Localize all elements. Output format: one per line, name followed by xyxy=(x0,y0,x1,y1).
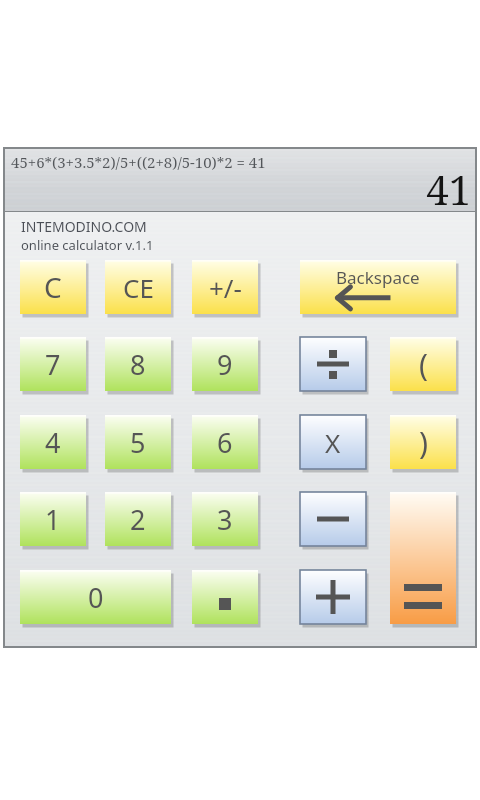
button[interactable]: Decimal point xyxy=(192,570,258,624)
button[interactable]: Minus xyxy=(300,492,366,546)
staticText: online calculator v.1.1 xyxy=(21,236,154,254)
staticText: C xyxy=(44,268,62,306)
button[interactable]: Equals xyxy=(390,492,456,624)
staticText: 0 xyxy=(88,579,104,616)
staticText: Backspace xyxy=(336,266,420,289)
button[interactable]: 9 xyxy=(192,337,258,391)
staticText: 7 xyxy=(45,346,61,383)
button[interactable]: Close parenthesis xyxy=(390,415,456,469)
staticText: 9 xyxy=(217,346,233,383)
staticText: 3 xyxy=(217,501,233,538)
staticText: 41 xyxy=(5,162,471,216)
staticText: ( xyxy=(419,344,428,385)
button[interactable]: C xyxy=(20,260,86,314)
staticText: +/- xyxy=(209,270,242,305)
button[interactable]: CE xyxy=(105,260,171,314)
button[interactable]: 7 xyxy=(20,337,86,391)
button[interactable]: 1 xyxy=(20,492,86,546)
staticText: 6 xyxy=(217,424,233,461)
staticText: 5 xyxy=(130,424,146,461)
button[interactable]: Divide xyxy=(300,337,366,391)
staticText: ) xyxy=(419,422,428,463)
button[interactable]: Open parenthesis xyxy=(390,337,456,391)
staticText: INTEMODINO.COM xyxy=(21,217,147,236)
button[interactable]: 6 xyxy=(192,415,258,469)
button[interactable]: 4 xyxy=(20,415,86,469)
button[interactable]: 5 xyxy=(105,415,171,469)
staticText: 4 xyxy=(45,424,61,461)
button[interactable]: 0 xyxy=(20,570,171,624)
button[interactable]: 2 xyxy=(105,492,171,546)
button[interactable]: 3 xyxy=(192,492,258,546)
staticText: 1 xyxy=(45,501,61,538)
staticText: X xyxy=(325,425,341,460)
button[interactable]: Multiply xyxy=(300,415,366,469)
staticText: 2 xyxy=(130,501,146,538)
staticText: 8 xyxy=(130,346,146,383)
button[interactable]: +/- xyxy=(192,260,258,314)
staticText: 45+6*(3+3.5*2)/5+((2+8)/5-10)*2 = 41 xyxy=(11,152,266,172)
button[interactable]: Plus xyxy=(300,570,366,624)
button[interactable]: 8 xyxy=(105,337,171,391)
button[interactable]: Backspace xyxy=(300,260,456,314)
staticText: CE xyxy=(123,270,154,305)
